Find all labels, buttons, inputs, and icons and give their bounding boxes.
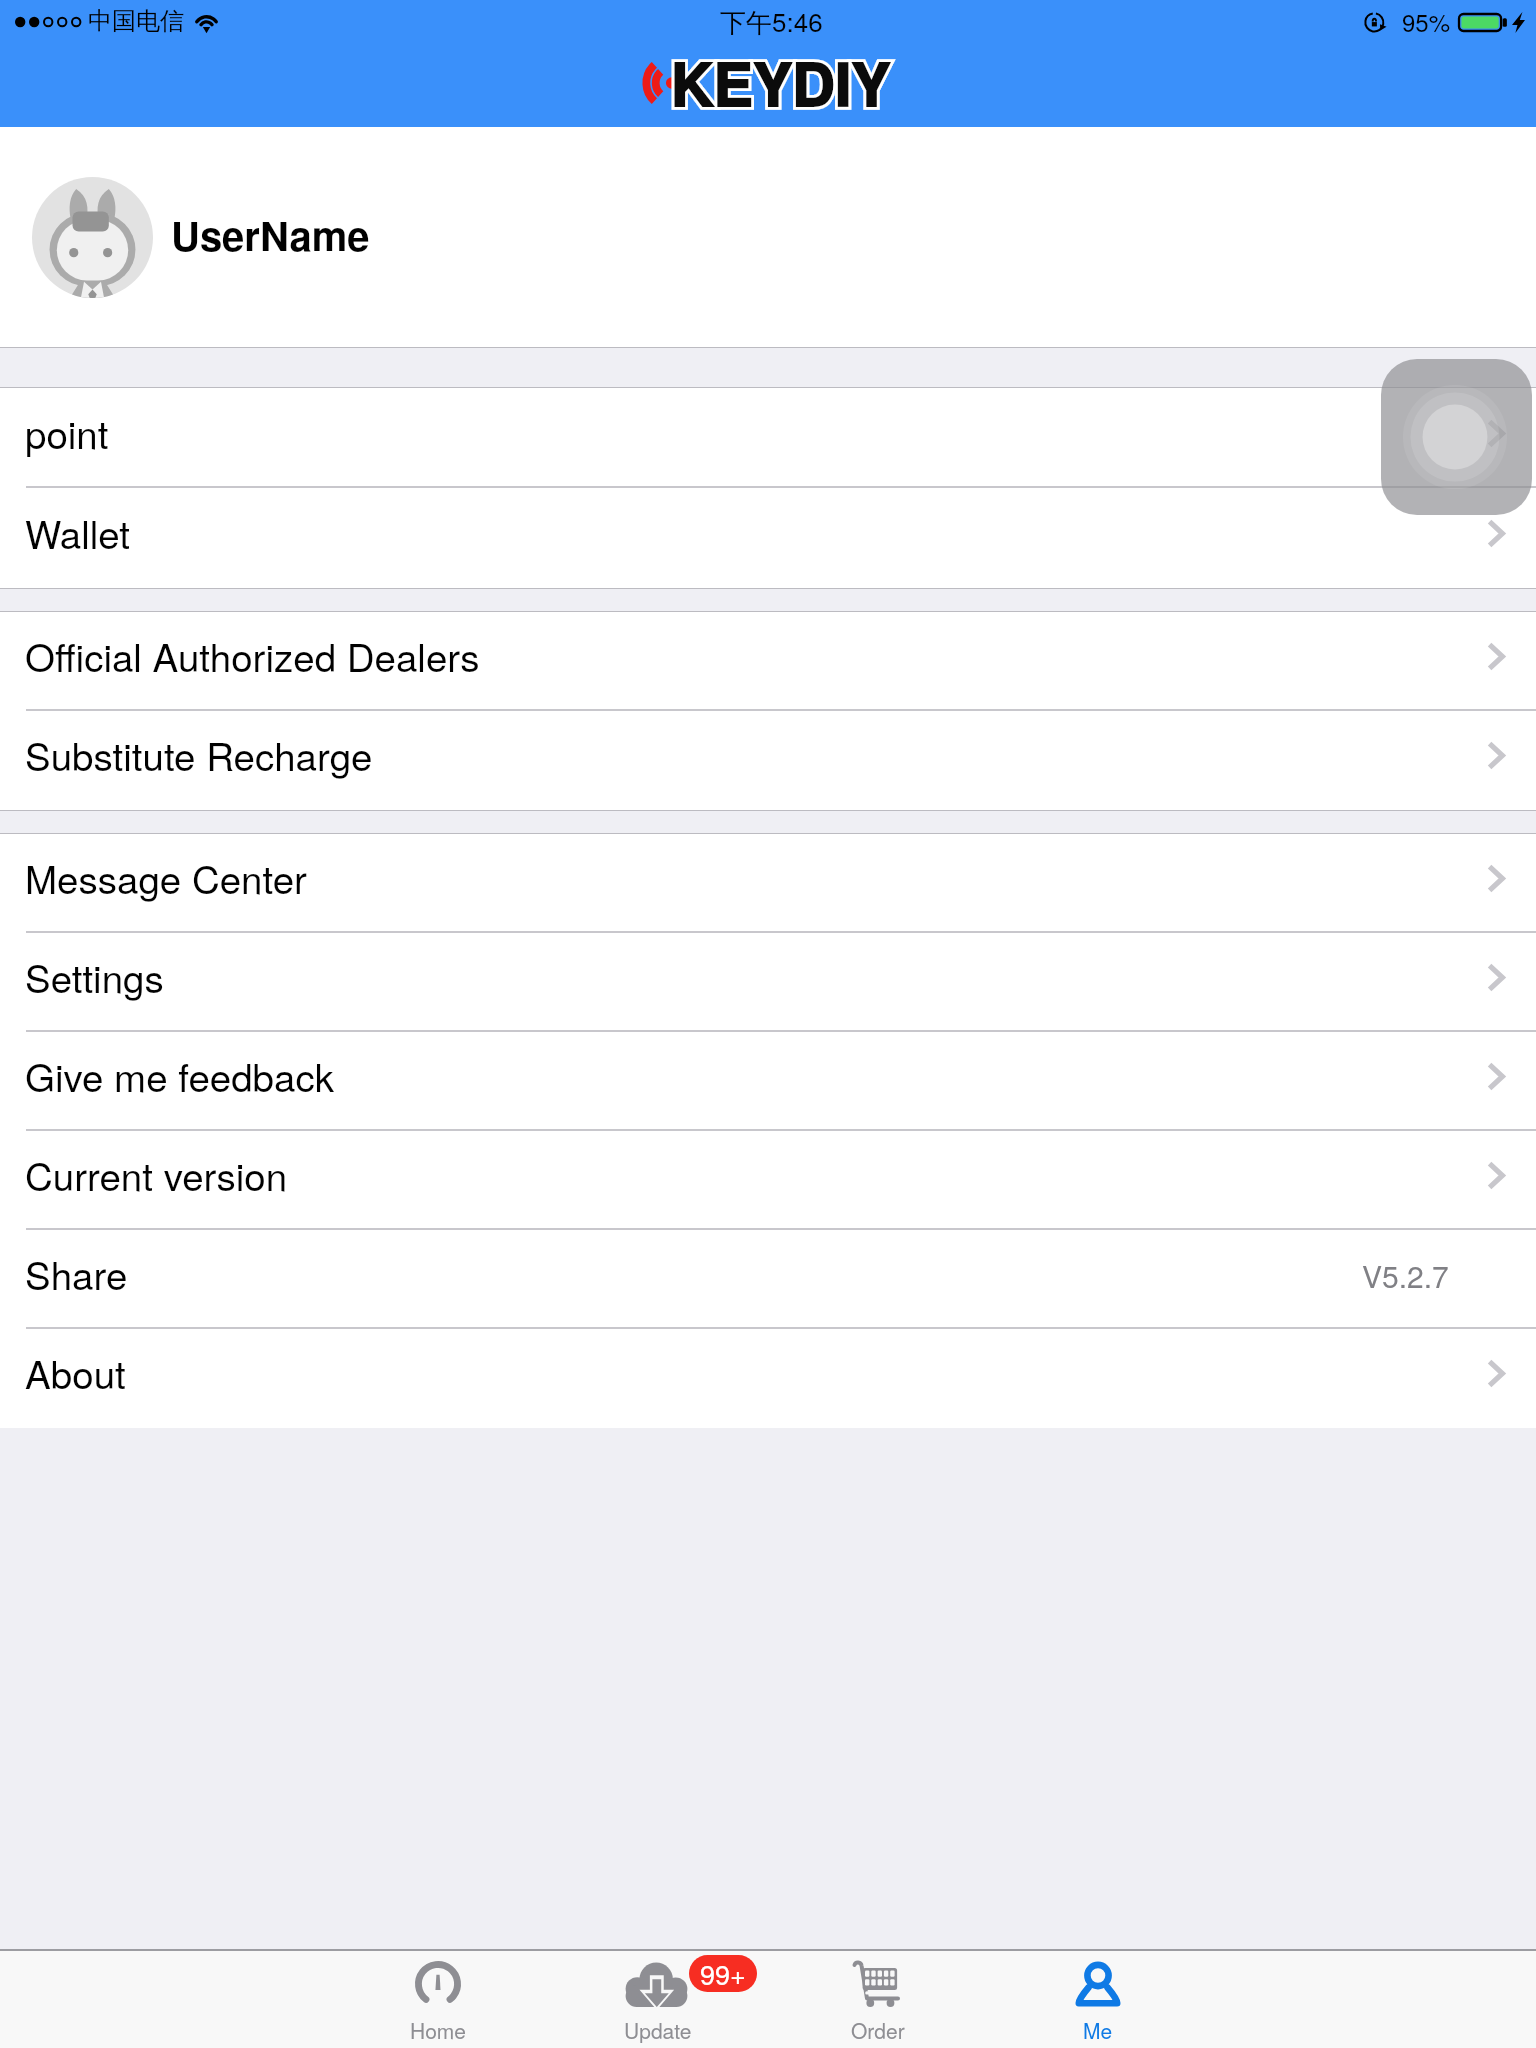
button[interactable]: About bbox=[0, 1329, 1536, 1428]
staticText: Substitute Recharge bbox=[25, 727, 373, 782]
staticText: UserName bbox=[171, 206, 370, 263]
staticText: Settings bbox=[25, 949, 164, 1004]
staticText: Wallet bbox=[25, 505, 131, 560]
staticText: 99+ bbox=[700, 1955, 746, 1991]
button[interactable]: UserName bbox=[0, 127, 1536, 347]
staticText: Message Center bbox=[25, 850, 307, 905]
button[interactable]: Wallet bbox=[0, 488, 1536, 588]
staticText: Order bbox=[851, 2015, 905, 2045]
button[interactable]: Substitute Recharge bbox=[0, 711, 1536, 810]
button[interactable]: Settings bbox=[0, 933, 1536, 1032]
staticText: Me bbox=[1083, 2015, 1113, 2045]
staticText: Give me feedback bbox=[25, 1048, 335, 1103]
staticText: Update bbox=[624, 2015, 692, 2045]
button[interactable]: Official Authorized Dealers bbox=[0, 612, 1536, 711]
button[interactable]: Update bbox=[548, 1951, 768, 2048]
staticText: 中国电信 bbox=[88, 6, 184, 36]
staticText: Share bbox=[25, 1246, 128, 1301]
staticText: Current version bbox=[25, 1147, 288, 1202]
staticText: Official Authorized Dealers bbox=[25, 628, 480, 683]
button[interactable]: Home bbox=[328, 1951, 548, 2048]
button[interactable]: Share bbox=[0, 1230, 1536, 1329]
staticText: KEYDIY bbox=[671, 40, 891, 124]
staticText: About bbox=[25, 1345, 126, 1400]
button[interactable]: Give me feedback bbox=[0, 1032, 1536, 1131]
button[interactable]: point bbox=[0, 388, 1536, 488]
button[interactable]: Current version bbox=[0, 1131, 1536, 1230]
staticText: 下午5:46 bbox=[720, 2, 823, 40]
staticText: point bbox=[25, 405, 109, 460]
staticText: KEYDIY bbox=[671, 40, 891, 124]
staticText: 95% bbox=[1402, 4, 1451, 38]
button[interactable]: Me bbox=[988, 1951, 1208, 2048]
button[interactable]: AssistiveTouch bbox=[1381, 359, 1532, 515]
button[interactable]: Message Center bbox=[0, 834, 1536, 933]
staticText: V5.2.7 bbox=[1362, 1254, 1449, 1297]
button[interactable]: Order bbox=[768, 1951, 988, 2048]
staticText: Home bbox=[410, 2015, 467, 2045]
